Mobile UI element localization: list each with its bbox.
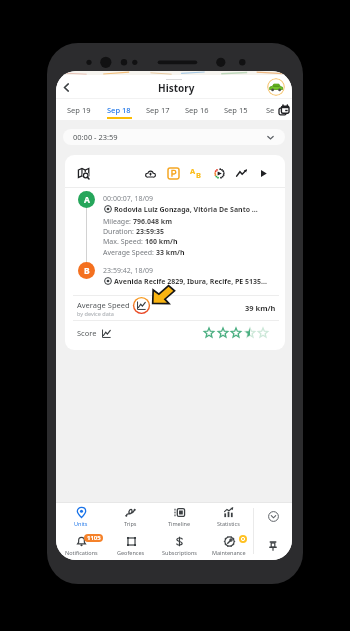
- staticText: 00:00:07, 18/09: [103, 194, 154, 204]
- button[interactable]: Map search: [76, 166, 91, 181]
- button[interactable]: Events: [212, 166, 226, 180]
- staticText: A: [190, 166, 196, 176]
- staticText: Sep 16: [185, 105, 209, 115]
- button[interactable]: Parking: [166, 166, 180, 180]
- button[interactable]: Back: [59, 80, 74, 95]
- staticText: 33 km/h: [156, 248, 185, 258]
- staticText: Trips: [124, 520, 137, 527]
- button[interactable]: Sep 17: [141, 99, 175, 120]
- staticText: Timeline: [168, 520, 191, 527]
- staticText: Sep 19: [67, 105, 91, 115]
- button[interactable]: Sep 15: [219, 99, 253, 120]
- button[interactable]: Score: [65, 321, 285, 345]
- staticText: Sep 15: [224, 105, 248, 115]
- staticText: 796.048 km: [133, 217, 172, 227]
- staticText: B: [84, 265, 90, 277]
- button[interactable]: 00:00 - 23:59: [63, 129, 285, 145]
- staticText: Mileage:: [103, 217, 133, 227]
- staticText: Notifications: [65, 549, 98, 556]
- staticText: B: [196, 170, 201, 180]
- button[interactable]: Timeline: [155, 502, 204, 531]
- staticText: Avenida Recife 2829, Ibura, Recife, PE 5…: [114, 277, 267, 287]
- staticText: Duration:: [103, 227, 136, 237]
- staticText: 39 km/h: [245, 303, 276, 313]
- staticText: Rodovia Luiz Gonzaga, Vitória De Santo .…: [114, 205, 258, 215]
- button[interactable]: Geofences: [106, 531, 155, 560]
- staticText: Max. Speed:: [103, 237, 145, 247]
- staticText: by device data: [77, 310, 114, 317]
- staticText: Sep 18: [107, 105, 131, 115]
- staticText: 23:59:35: [136, 227, 164, 237]
- staticText: Se: [266, 105, 275, 115]
- button[interactable]: Se: [253, 99, 287, 120]
- button[interactable]: Sep 19: [62, 99, 96, 120]
- button[interactable]: Notifications: [56, 531, 106, 560]
- staticText: Subscriptions: [162, 549, 197, 556]
- staticText: Units: [74, 520, 88, 527]
- staticText: Average Speed: [77, 300, 130, 310]
- staticText: Score: [77, 328, 97, 338]
- button[interactable]: Calendar: [277, 103, 291, 117]
- button[interactable]: Subscriptions: [155, 531, 204, 560]
- button[interactable]: Trips: [106, 502, 155, 531]
- staticText: 160 km/h: [145, 237, 178, 247]
- staticText: Statistics: [217, 520, 240, 527]
- button[interactable]: Sep 16: [180, 99, 214, 120]
- button[interactable]: Sep 18: [102, 99, 136, 120]
- staticText: History: [158, 81, 195, 95]
- staticText: 23:59:42, 18/09: [103, 266, 154, 276]
- button[interactable]: Units: [56, 502, 106, 531]
- staticText: Average Speed:: [103, 248, 156, 258]
- button[interactable]: Average Speed: [65, 296, 285, 320]
- button[interactable]: Vehicle: [267, 78, 285, 96]
- staticText: Geofences: [117, 549, 145, 556]
- staticText: 00:00 - 23:59: [73, 132, 118, 142]
- staticText: 1105: [87, 534, 101, 542]
- button[interactable]: Chart: [234, 166, 248, 180]
- button[interactable]: Collapse: [254, 502, 292, 531]
- button[interactable]: Play: [256, 166, 270, 180]
- staticText: A: [84, 194, 90, 206]
- staticText: Sep 17: [146, 105, 170, 115]
- button[interactable]: Pin: [254, 531, 292, 560]
- staticText: Maintenance: [212, 549, 246, 556]
- button[interactable]: Cloud: [143, 166, 157, 180]
- button[interactable]: Maintenance: [204, 531, 253, 560]
- button[interactable]: Address: [189, 166, 203, 180]
- button[interactable]: Statistics: [204, 502, 253, 531]
